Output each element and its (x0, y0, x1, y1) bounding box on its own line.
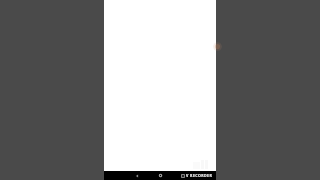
button[interactable]: Home (154, 171, 166, 180)
button[interactable]: Recent apps (179, 171, 187, 180)
staticText: V RECORDER (186, 173, 213, 178)
button[interactable]: Back (131, 171, 142, 180)
